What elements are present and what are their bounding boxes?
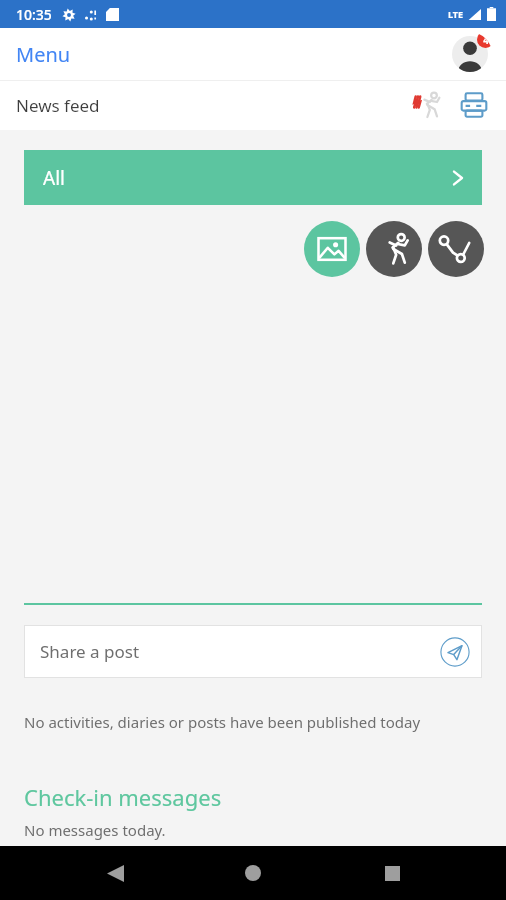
button[interactable]: Share a post xyxy=(24,625,482,678)
button[interactable]: Activities xyxy=(366,221,422,277)
staticText: Menu xyxy=(16,41,71,68)
staticText: All xyxy=(43,165,65,191)
staticText: Check-in messages xyxy=(24,782,222,812)
staticText: Share a post xyxy=(40,640,140,663)
button[interactable]: Home xyxy=(229,849,277,897)
button[interactable]: Profile, 4 notifications xyxy=(448,32,492,76)
button[interactable]: Menu xyxy=(10,35,77,74)
staticText: No messages today. xyxy=(24,820,166,840)
button[interactable]: All xyxy=(24,150,482,205)
button[interactable]: Photos xyxy=(304,221,360,277)
staticText: News feed xyxy=(16,94,100,117)
staticText: No activities, diaries or posts have bee… xyxy=(24,712,421,732)
staticText: 10:35 xyxy=(16,5,52,24)
staticText: 4 xyxy=(483,33,489,47)
button[interactable]: Recents xyxy=(368,849,416,897)
button[interactable]: Back xyxy=(91,849,139,897)
button[interactable]: Start activity xyxy=(408,85,448,125)
button[interactable]: Statistics xyxy=(428,221,484,277)
other: Send xyxy=(438,635,472,669)
staticText: LTE xyxy=(448,8,464,20)
button[interactable]: Devices xyxy=(454,85,494,125)
